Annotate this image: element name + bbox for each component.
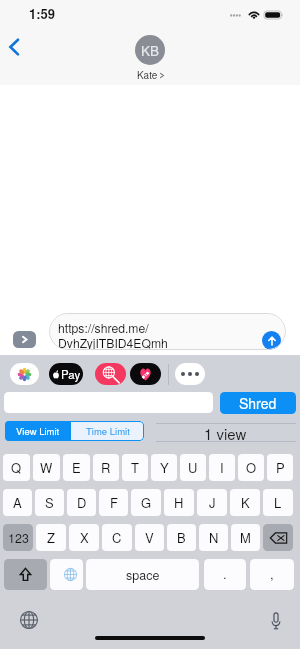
button[interactable]: Dictate (270, 612, 282, 630)
staticText: M (240, 528, 251, 547)
button[interactable]: Photos (10, 363, 39, 385)
button[interactable]: Emoji keyboard (50, 559, 83, 590)
staticText: . (223, 564, 227, 583)
button[interactable]: More apps (175, 363, 205, 385)
button[interactable]: Change keyboard (20, 611, 38, 629)
button[interactable]: N (199, 524, 228, 551)
button[interactable]: I (209, 454, 235, 481)
button[interactable]: M (231, 524, 260, 551)
staticText: S (45, 493, 54, 512)
button[interactable]: Q (3, 454, 30, 481)
button[interactable]: P (267, 454, 293, 481)
staticText: C (112, 528, 122, 547)
button[interactable]: space (86, 559, 199, 590)
button[interactable]: F (99, 489, 128, 516)
button[interactable]: Z (36, 524, 66, 551)
button[interactable]: W (33, 454, 60, 481)
staticText: View Limit (16, 424, 60, 438)
button[interactable]: A (3, 489, 32, 516)
staticText: 1:59 (29, 4, 56, 23)
button[interactable]: T (122, 454, 148, 481)
button[interactable]: B (167, 524, 196, 551)
button[interactable]: V (135, 524, 164, 551)
staticText: R (101, 458, 111, 477)
button[interactable]: Time Limit (71, 421, 144, 441)
button[interactable]: C (102, 524, 132, 551)
button[interactable]: . (204, 559, 246, 590)
staticText: K (241, 493, 250, 512)
staticText: F (110, 493, 118, 512)
button[interactable]: Y (151, 454, 177, 481)
button[interactable]: H (164, 489, 194, 516)
staticText: V (145, 528, 154, 547)
button[interactable]: K (230, 489, 260, 516)
staticText: P (276, 458, 285, 477)
staticText: J (209, 493, 216, 512)
button[interactable]: J (197, 489, 227, 516)
button[interactable]: Shred (95, 363, 126, 385)
staticText: KB (141, 41, 160, 60)
staticText: N (209, 528, 219, 547)
staticText: G (141, 493, 152, 512)
staticText: X (80, 528, 89, 547)
staticText: L (274, 493, 282, 512)
button[interactable]: U (180, 454, 206, 481)
button[interactable]: Shift (4, 559, 47, 590)
button[interactable]: Apple Pay (49, 363, 83, 385)
staticText: T (131, 458, 139, 477)
button[interactable]: Digital Touch (130, 363, 161, 385)
button[interactable]: , (250, 559, 294, 590)
button[interactable]: R (93, 454, 119, 481)
button[interactable]: KB (135, 35, 165, 82)
button[interactable]: Back (4, 33, 26, 59)
button[interactable]: X (69, 524, 99, 551)
staticText: Shred (239, 393, 277, 413)
staticText: D (77, 493, 87, 512)
staticText: Time Limit (86, 424, 130, 438)
staticText: U (188, 458, 198, 477)
staticText: Y (160, 458, 169, 477)
staticText: space (126, 566, 160, 584)
staticText: Z (47, 528, 55, 547)
button[interactable]: App drawer (13, 331, 36, 348)
staticText: Kate (137, 68, 158, 82)
button[interactable]: 123 (3, 524, 33, 551)
button[interactable]: Backspace (263, 524, 293, 551)
button[interactable]: Shred (220, 392, 296, 414)
staticText: B (177, 528, 186, 547)
staticText: https://shred.me/ DvhZyjITBID4EQmh (58, 319, 168, 350)
button[interactable]: L (263, 489, 293, 516)
button[interactable]: E (63, 454, 90, 481)
button[interactable]: Send (262, 331, 281, 350)
staticText: Q (11, 458, 22, 477)
staticText: , (270, 564, 274, 583)
button[interactable]: D (67, 489, 96, 516)
staticText: 123 (8, 529, 29, 547)
staticText: Pay (61, 366, 81, 382)
button[interactable]: O (238, 454, 264, 481)
staticText: E (72, 458, 81, 477)
button[interactable]: G (131, 489, 161, 516)
staticText: O (246, 458, 257, 477)
button[interactable]: View Limit (5, 421, 71, 441)
staticText: 1 view (204, 423, 247, 442)
button[interactable]: S (35, 489, 64, 516)
staticText: A (13, 493, 22, 512)
staticText: H (174, 493, 184, 512)
staticText: W (40, 458, 53, 477)
staticText: I (220, 458, 224, 477)
button[interactable]: https://shred.me/ DvhZyjITBID4EQmh (49, 313, 286, 350)
button[interactable]: 1 view (156, 423, 296, 442)
